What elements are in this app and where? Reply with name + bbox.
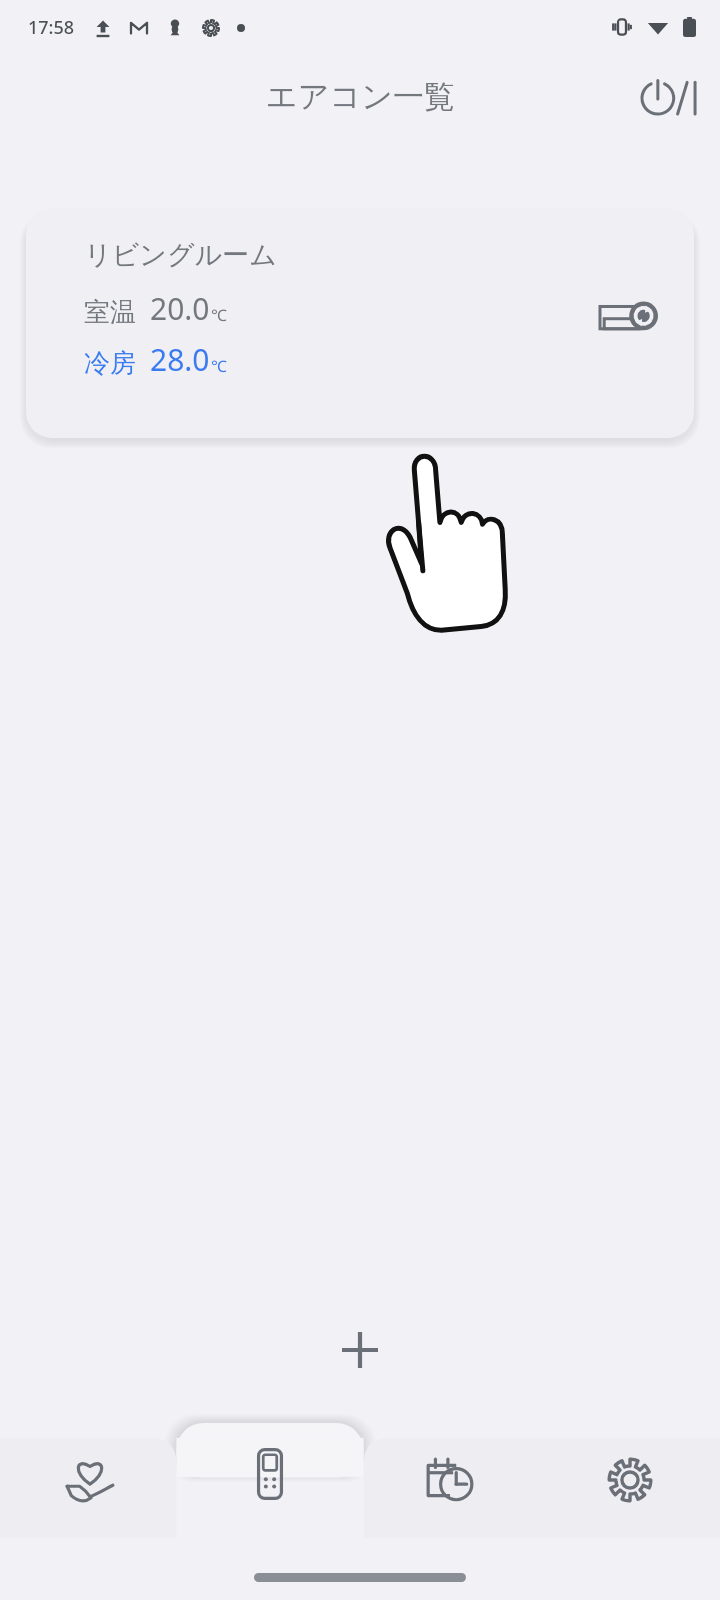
staticText: 28.0 [150,339,210,380]
button[interactable]: Favorites [0,1408,180,1538]
staticText: リビングルーム [84,238,277,272]
staticText: 冷房 [84,347,136,380]
button[interactable]: Schedule [360,1408,540,1538]
staticText: エアコン一覧 [266,77,455,116]
button[interactable]: Remote [180,1408,360,1538]
staticText: 20.0 [150,288,210,329]
button[interactable]: Settings [540,1408,720,1538]
staticText: ℃ [211,355,227,377]
staticText: 17:58 [28,15,75,40]
button[interactable]: Power [634,64,698,128]
button[interactable]: リビングルーム [26,208,694,438]
staticText: ℃ [211,304,227,326]
button[interactable]: Add [0,1314,720,1386]
staticText: 室温 [84,296,136,329]
